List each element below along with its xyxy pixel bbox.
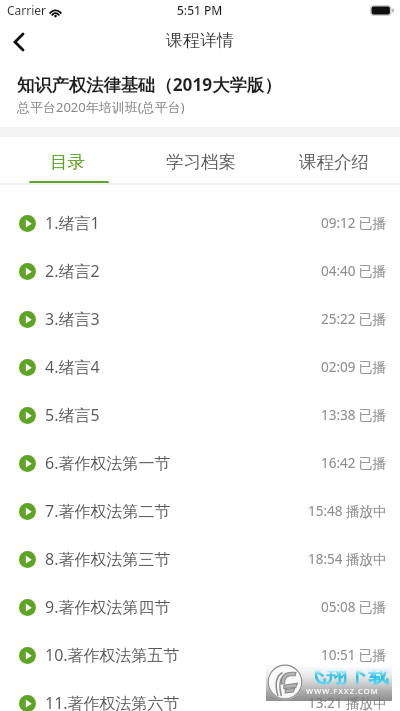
staticText: 13:38 已播 [321, 406, 387, 424]
staticText: 飞翔下载 [305, 662, 389, 688]
staticText: 9.著作权法第四节 [45, 596, 171, 618]
staticText: 4.绪言4 [45, 356, 100, 378]
staticText: 13:21 播放中 [308, 694, 387, 711]
staticText: 15:48 播放中 [308, 502, 387, 520]
staticText: 25:22 已播 [321, 310, 387, 328]
button[interactable]: 1.绪言1 [0, 199, 400, 247]
staticText: Carrier [7, 2, 47, 18]
button[interactable]: 学习档案 [134, 137, 267, 185]
staticText: 5:51 PM [177, 2, 223, 18]
staticText: 7.著作权法第二节 [45, 500, 171, 522]
staticText: 05:08 已播 [321, 598, 387, 616]
button[interactable]: 目录 [0, 137, 134, 185]
button[interactable]: 6.著作权法第一节 [0, 439, 400, 487]
button[interactable]: 3.绪言3 [0, 295, 400, 343]
staticText: 18:54 播放中 [308, 550, 387, 568]
staticText: 8.著作权法第三节 [45, 548, 171, 570]
button[interactable]: 4.绪言4 [0, 343, 400, 391]
staticText: 1.绪言1 [45, 212, 100, 234]
staticText: 11.著作权法第六节 [45, 692, 180, 711]
staticText: 16:42 已播 [321, 454, 387, 472]
staticText: 6.著作权法第一节 [45, 452, 171, 474]
staticText: 2.绪言2 [45, 260, 100, 282]
staticText: 课程介绍 [299, 151, 369, 173]
button[interactable]: 11.著作权法第六节 [0, 679, 400, 711]
staticText: 3.绪言3 [45, 308, 100, 330]
staticText: 目录 [50, 151, 85, 173]
button[interactable]: 7.著作权法第二节 [0, 487, 400, 535]
button[interactable]: 10.著作权法第五节 [0, 631, 400, 679]
staticText: 知识产权法律基础（2019大学版） [17, 73, 282, 97]
button[interactable]: 8.著作权法第三节 [0, 535, 400, 583]
button[interactable]: Back [0, 22, 44, 58]
staticText: 09:12 已播 [321, 214, 387, 232]
button[interactable]: 课程介绍 [267, 137, 400, 185]
staticText: 04:40 已播 [321, 262, 387, 280]
staticText: 总平台2020年培训班(总平台) [17, 98, 185, 116]
staticText: WWW.FXXZ.COM [306, 686, 379, 696]
button[interactable]: 2.绪言2 [0, 247, 400, 295]
staticText: 5.绪言5 [45, 404, 100, 426]
staticText: 课程详情 [166, 30, 234, 51]
staticText: 10:51 已播 [321, 646, 387, 664]
staticText: 学习档案 [166, 151, 236, 173]
staticText: 02:09 已播 [321, 358, 387, 376]
button[interactable]: 9.著作权法第四节 [0, 583, 400, 631]
button[interactable]: 5.绪言5 [0, 391, 400, 439]
staticText: 10.著作权法第五节 [45, 644, 180, 666]
